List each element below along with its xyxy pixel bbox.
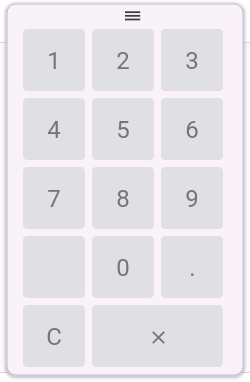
button[interactable]: 4 — [23, 98, 85, 160]
staticText: 1 — [47, 47, 61, 75]
staticText: . — [189, 254, 196, 282]
button[interactable]: 3 — [161, 29, 223, 91]
staticText: C — [46, 323, 62, 351]
button[interactable]: 2 — [92, 29, 154, 91]
button[interactable]: . — [161, 236, 223, 298]
button[interactable]: 6 — [161, 98, 223, 160]
staticText: 0 — [116, 254, 130, 282]
button[interactable]: 5 — [92, 98, 154, 160]
staticText: 7 — [47, 185, 61, 213]
button[interactable]: C — [23, 305, 85, 367]
button[interactable]: 9 — [161, 167, 223, 229]
staticText: 2 — [116, 47, 130, 75]
staticText: 6 — [185, 116, 199, 144]
button[interactable]: 0 — [92, 236, 154, 298]
staticText: 3 — [185, 47, 199, 75]
button[interactable]: 8 — [92, 167, 154, 229]
staticText: 8 — [116, 185, 130, 213]
staticText: 9 — [185, 185, 199, 213]
staticText: 4 — [47, 116, 61, 144]
button[interactable]: 7 — [23, 167, 85, 229]
button[interactable]: Menu — [104, 4, 150, 28]
staticText: 5 — [116, 116, 130, 144]
button[interactable]: 1 — [23, 29, 85, 91]
button[interactable]: Delete — [92, 305, 223, 367]
